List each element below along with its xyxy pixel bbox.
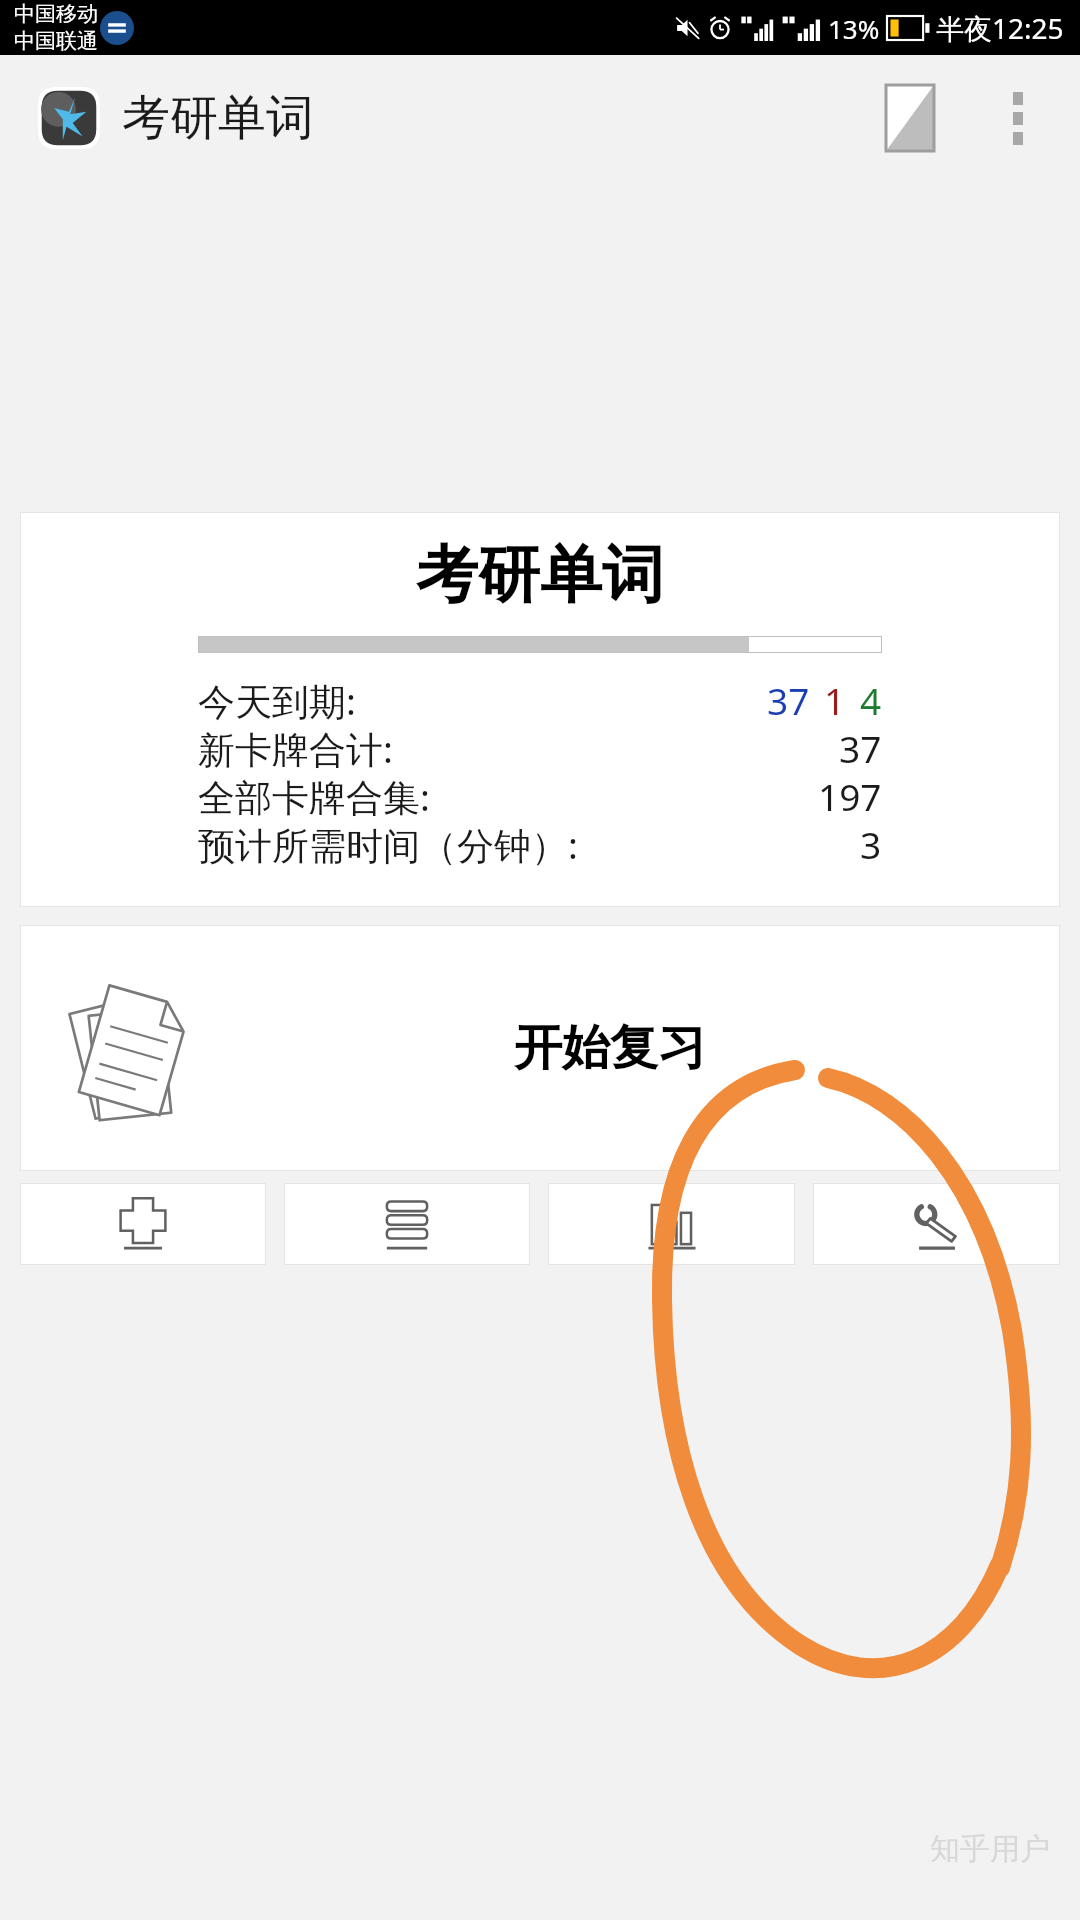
button[interactable]: Statistics <box>548 1183 795 1265</box>
staticText: 新卡牌合计: <box>198 723 393 771</box>
button[interactable]: Night mode <box>872 80 948 156</box>
staticText: 考研单词 <box>416 536 664 614</box>
staticText: 知乎用户 <box>930 1830 1050 1868</box>
staticText: 13% <box>828 11 880 46</box>
staticText: 今天到期: <box>198 675 356 723</box>
button[interactable]: Settings <box>813 1183 1060 1265</box>
staticText: 中国联通 <box>14 28 98 54</box>
button[interactable]: Add card <box>20 1183 266 1265</box>
staticText: 37 <box>839 723 882 771</box>
button[interactable]: 考研单词 <box>20 512 1060 907</box>
button[interactable]: More options <box>980 80 1056 156</box>
staticText: 1 <box>824 675 846 723</box>
staticText: 197 <box>818 771 882 819</box>
button[interactable]: Card list <box>284 1183 530 1265</box>
staticText: 全部卡牌合集: <box>198 771 430 819</box>
staticText: 3 <box>860 819 882 867</box>
staticText: 半夜12:25 <box>936 9 1064 47</box>
staticText: 预计所需时间（分钟）: <box>198 819 578 867</box>
staticText: 开始复习 <box>514 1018 706 1078</box>
button[interactable]: 开始复习 <box>20 925 1060 1171</box>
staticText: 37 <box>767 675 810 723</box>
staticText: 中国移动 <box>14 1 98 27</box>
staticText: 考研单词 <box>122 88 314 148</box>
staticText: 4 <box>860 675 882 723</box>
